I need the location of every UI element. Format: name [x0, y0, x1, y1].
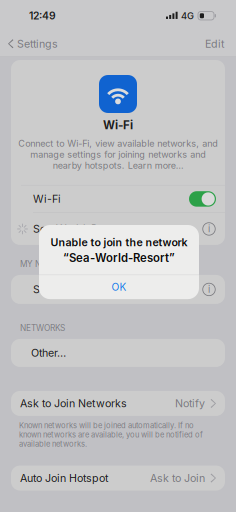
staticText: Ask to Join Networks [20, 397, 127, 410]
staticText: MY NETWORKS [20, 259, 80, 269]
button[interactable]: Sea-World-Resort [11, 213, 225, 245]
staticText: Unable to join the network [50, 236, 187, 249]
staticText: 12:49 [29, 9, 56, 22]
button[interactable]: Wi-Fi [189, 191, 216, 207]
staticText: i [208, 284, 210, 295]
staticText: OK [111, 281, 126, 293]
staticText: Notify [175, 397, 205, 410]
button[interactable]: Other… [11, 339, 225, 367]
staticText: Sea-World-Guest [33, 283, 120, 296]
staticText: Other… [31, 346, 66, 359]
staticText: Wi-Fi [33, 192, 61, 205]
staticText: Settings [17, 37, 58, 50]
staticText: 4G [181, 10, 194, 21]
staticText: Known networks will be joined automatica… [19, 421, 203, 448]
staticText: “Sea-World-Resort” [63, 251, 175, 265]
staticText: NETWORKS [20, 323, 65, 333]
button[interactable]: Settings [0, 32, 66, 56]
button[interactable]: Network Information [202, 282, 216, 296]
staticText: Sea-World-Resort [33, 222, 123, 235]
staticText: Auto Join Hotspot [20, 472, 108, 484]
staticText: Connect to Wi-Fi, view available network… [18, 138, 218, 171]
button[interactable]: Ask to Join Networks [11, 391, 225, 416]
staticText: Ask to Join [150, 472, 205, 484]
staticText: Wi-Fi [103, 118, 133, 132]
button[interactable]: Edit [197, 32, 236, 56]
button[interactable]: Wi-Fi [11, 185, 225, 212]
staticText: Edit [205, 37, 224, 50]
staticText: i [208, 223, 210, 235]
button[interactable]: Network Information [202, 222, 216, 236]
button[interactable]: OK [39, 275, 199, 299]
button[interactable]: Auto Join Hotspot [11, 465, 225, 490]
button[interactable]: Sea-World-Guest [11, 275, 225, 304]
